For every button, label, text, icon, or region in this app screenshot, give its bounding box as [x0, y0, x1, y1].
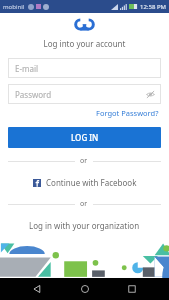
staticText: Log in with your organization [29, 220, 140, 231]
button[interactable]: Home [74, 278, 96, 300]
button[interactable]: Continue with Facebook [0, 175, 169, 190]
staticText: or [80, 199, 88, 209]
button[interactable]: Recent apps [121, 278, 143, 300]
staticText: LOG IN [71, 132, 99, 143]
button[interactable]: Back [26, 278, 48, 300]
staticText: Log into your account [0, 38, 169, 49]
staticText: Password [15, 89, 52, 100]
button[interactable]: Password [8, 84, 161, 104]
button[interactable]: Log in with your organization [0, 218, 169, 233]
button[interactable]: E-mail [8, 58, 161, 78]
button[interactable]: Show password [146, 90, 155, 99]
button[interactable]: Forgot Password? [94, 107, 161, 119]
staticText: E-mail [15, 63, 39, 74]
button[interactable]: LOG IN [8, 127, 161, 148]
staticText: Continue with Facebook [46, 177, 137, 188]
staticText: Forgot Password? [96, 108, 159, 118]
staticText: 12:58 PM [140, 3, 166, 11]
staticText: mobinil [3, 3, 25, 11]
staticText: or [80, 156, 88, 166]
